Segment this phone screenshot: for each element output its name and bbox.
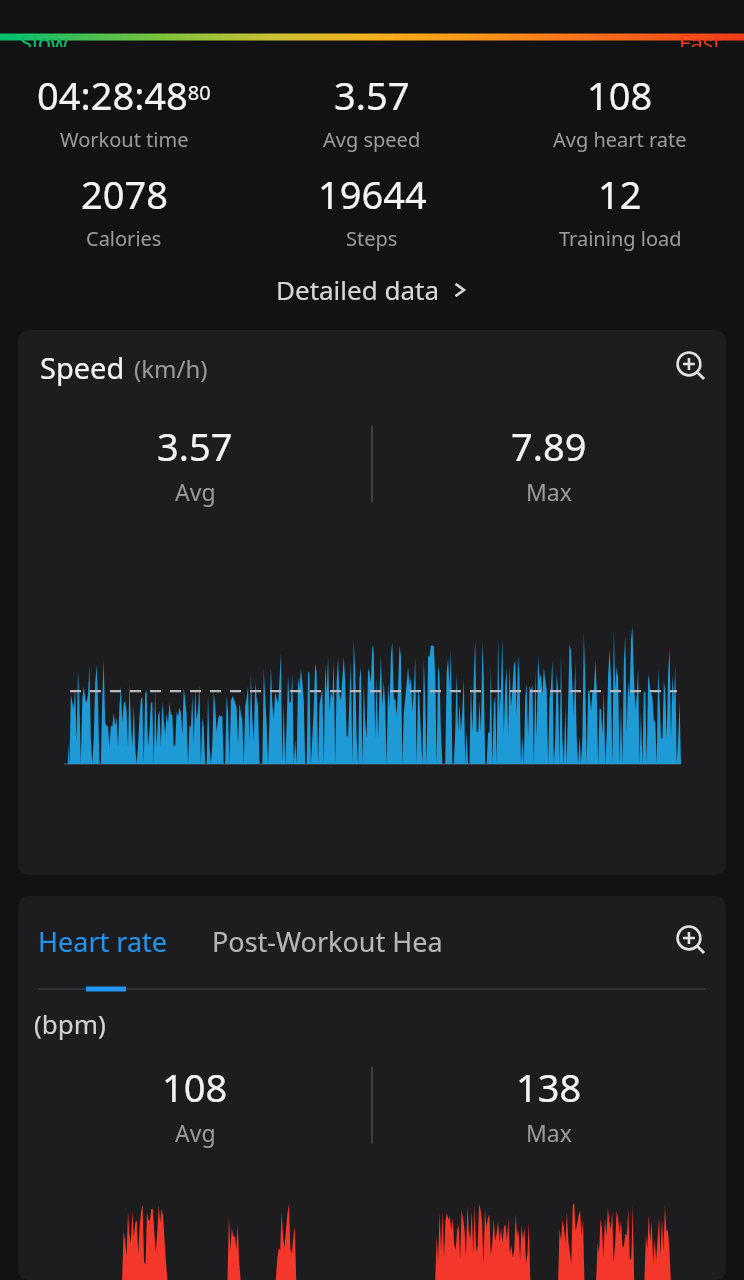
staticText: Avg [175,476,216,507]
staticText: 12 [598,168,642,220]
staticText: Speed [40,348,125,387]
staticText: Calories [86,225,162,252]
staticText: 7.89 [511,420,587,472]
staticText: Max [526,1117,572,1148]
staticText: Workout time [60,126,189,153]
button[interactable]: 3.57 [248,69,496,153]
button[interactable]: 19644 [248,168,496,252]
button[interactable]: Expand heart rate chart [668,917,716,965]
button[interactable]: 04:28:4880 [0,69,248,153]
staticText: Avg heart rate [553,126,687,153]
staticText: (km/h) [134,352,208,385]
button[interactable]: Heart rate [38,923,168,960]
staticText: Fast [679,27,722,47]
staticText: Heart rate [38,923,168,960]
staticText: 108 [162,1061,228,1113]
button[interactable]: 12 [496,168,744,252]
staticText: Max [526,476,572,507]
button[interactable]: 108 [496,69,744,153]
staticText: Post-Workout Hea [212,923,443,960]
staticText: 19644 [318,168,427,220]
staticText: 04:28:4880 [37,69,211,121]
staticText: Slow [20,27,68,47]
staticText: 3.57 [157,420,233,472]
button[interactable]: Expand speed chart [668,343,716,391]
staticText: Avg [175,1117,216,1148]
staticText: Steps [346,225,398,252]
staticText: 2078 [81,168,168,220]
staticText: Training load [559,225,682,252]
staticText: (bpm) [34,1006,106,1041]
staticText: Detailed data [276,272,439,307]
staticText: 108 [587,69,653,121]
staticText: 138 [516,1061,582,1113]
staticText: 3.57 [334,69,410,121]
button[interactable]: Post-Workout Hea [212,923,443,960]
button[interactable]: Detailed data [264,266,481,313]
staticText: Avg speed [323,126,421,153]
button[interactable]: 2078 [0,168,248,252]
